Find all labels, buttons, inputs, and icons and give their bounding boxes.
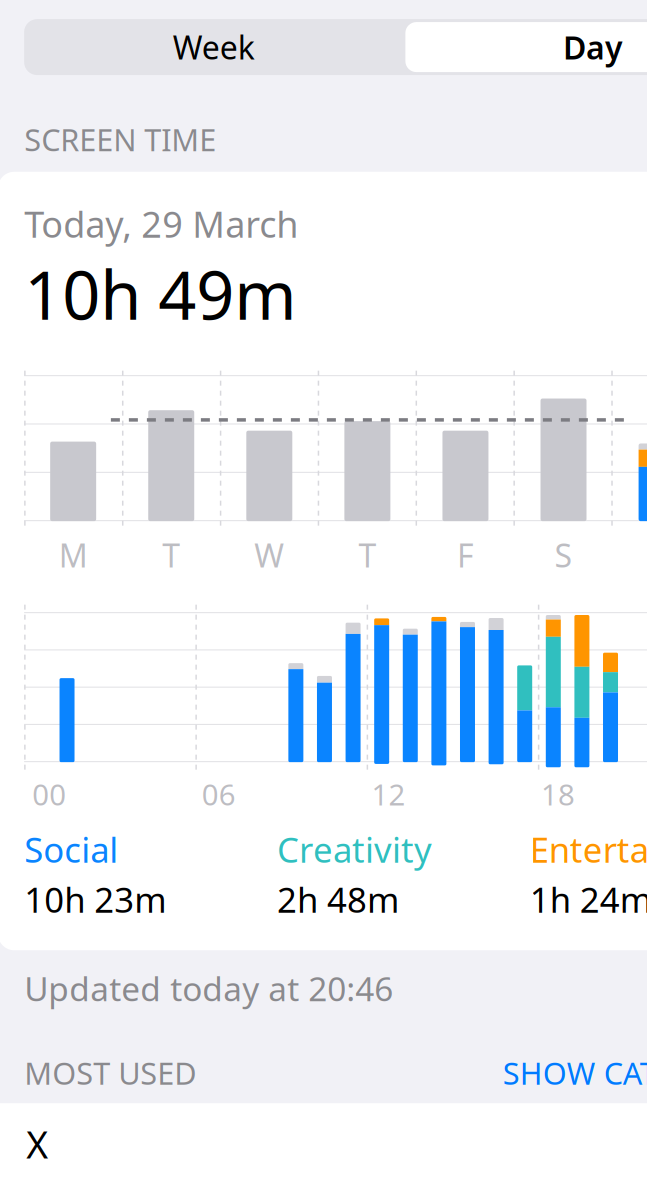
staticText: Week [173, 26, 255, 68]
staticText: T [162, 534, 180, 576]
staticText: F [457, 534, 474, 576]
staticText: SCREEN TIME [24, 119, 216, 160]
staticText: X [26, 1119, 48, 1169]
staticText: M [59, 534, 88, 576]
button[interactable]: 𝕏 [0, 1103, 647, 1199]
button[interactable]: SHOW CATEGORIES [503, 1052, 647, 1093]
staticText: Entertainment [530, 826, 647, 872]
staticText: 06 [202, 775, 236, 814]
staticText: 18 [541, 775, 575, 814]
staticText: 10h 49m [24, 250, 296, 338]
button[interactable]: Week [24, 22, 403, 72]
staticText: 00 [32, 775, 66, 814]
staticText: Updated today at 20:46 [24, 966, 393, 1010]
staticText: 12 [371, 775, 405, 814]
staticText: T [358, 534, 376, 576]
staticText: W [254, 534, 284, 576]
staticText: 2h 48m [277, 876, 399, 922]
staticText: S [554, 534, 572, 576]
button[interactable]: Day [405, 22, 647, 72]
staticText: Day [563, 26, 623, 68]
staticText: Creativity [277, 826, 432, 872]
staticText: 10h 23m [24, 876, 166, 922]
staticText: SHOW CATEGORIES [503, 1052, 647, 1093]
staticText: Today, 29 March [24, 200, 298, 248]
staticText: MOST USED [24, 1052, 196, 1093]
staticText: Social [24, 826, 118, 872]
staticText: 1h 24m [530, 876, 647, 922]
